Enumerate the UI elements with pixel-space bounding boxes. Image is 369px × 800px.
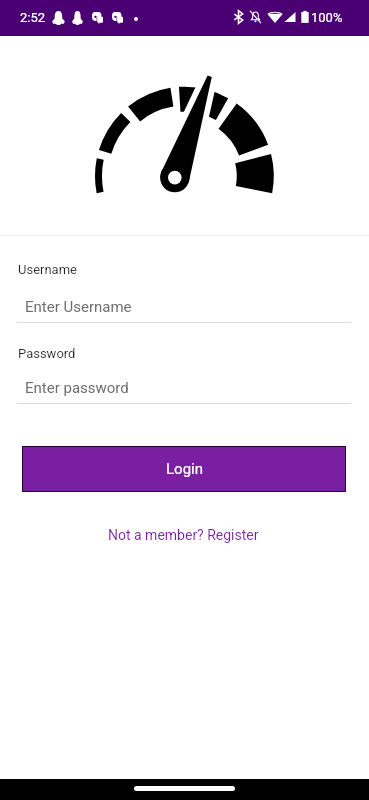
- button[interactable]: Enter password: [17, 375, 351, 404]
- staticText: 100%: [311, 10, 343, 25]
- staticText: Login: [166, 460, 203, 478]
- staticText: Not a member? Register: [108, 527, 259, 543]
- button[interactable]: Login: [23, 447, 345, 491]
- staticText: Password: [18, 346, 76, 361]
- button[interactable]: Enter Username: [17, 294, 351, 323]
- staticText: Enter Username: [25, 298, 132, 316]
- staticText: Enter password: [25, 379, 129, 397]
- staticText: 2:52: [20, 10, 46, 25]
- button[interactable]: Not a member? Register: [100, 522, 266, 548]
- staticText: Username: [18, 262, 77, 277]
